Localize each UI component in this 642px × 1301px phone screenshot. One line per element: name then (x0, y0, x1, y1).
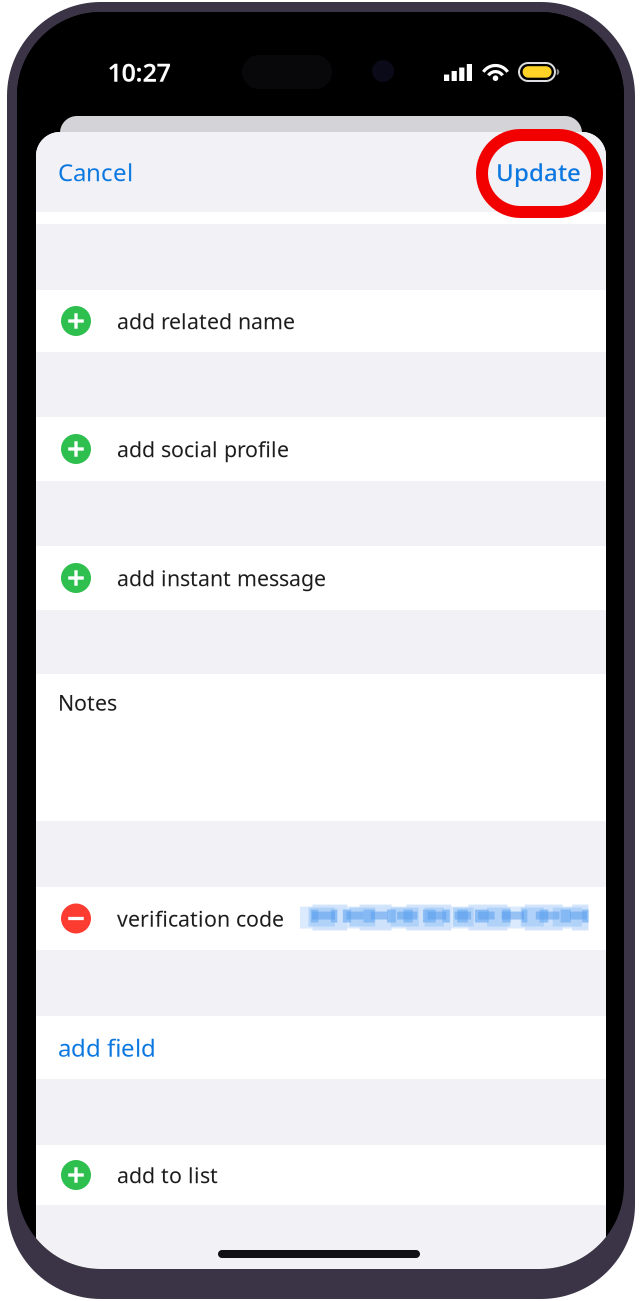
staticText: Update (496, 156, 581, 188)
button[interactable]: Update (406, 132, 606, 212)
staticText: 10:27 (107, 55, 170, 89)
button[interactable]: add related name (36, 290, 606, 352)
staticText: add field (58, 1032, 156, 1063)
staticText: add social profile (117, 435, 289, 463)
staticText: Notes (58, 688, 117, 717)
button[interactable]: add to list (36, 1145, 606, 1205)
button[interactable]: add instant message (36, 546, 606, 610)
staticText: add related name (117, 307, 295, 335)
staticText: Cancel (58, 156, 133, 188)
staticText: add to list (117, 1161, 218, 1189)
button[interactable]: verification code (36, 887, 606, 950)
staticText: add instant message (117, 564, 326, 592)
button[interactable]: add social profile (36, 417, 606, 481)
staticText: verification code (117, 904, 284, 933)
button[interactable]: add field (36, 1016, 606, 1079)
button[interactable]: Cancel (36, 132, 236, 212)
